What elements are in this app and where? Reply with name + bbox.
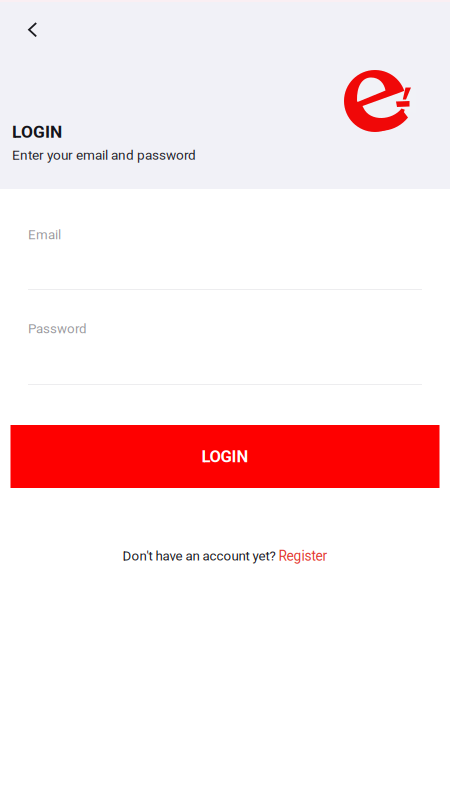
- staticText: Don't have an account yet?: [122, 548, 278, 564]
- button[interactable]: Back: [0, 17, 54, 43]
- button[interactable]: Register: [278, 548, 327, 564]
- staticText: Register: [278, 548, 327, 564]
- staticText: Email: [28, 227, 61, 243]
- staticText: LOGIN: [12, 122, 62, 142]
- staticText: Enter your email and password: [12, 147, 196, 163]
- button[interactable]: LOGIN: [10, 425, 439, 488]
- staticText: LOGIN: [201, 447, 248, 466]
- staticText: Password: [28, 321, 87, 337]
